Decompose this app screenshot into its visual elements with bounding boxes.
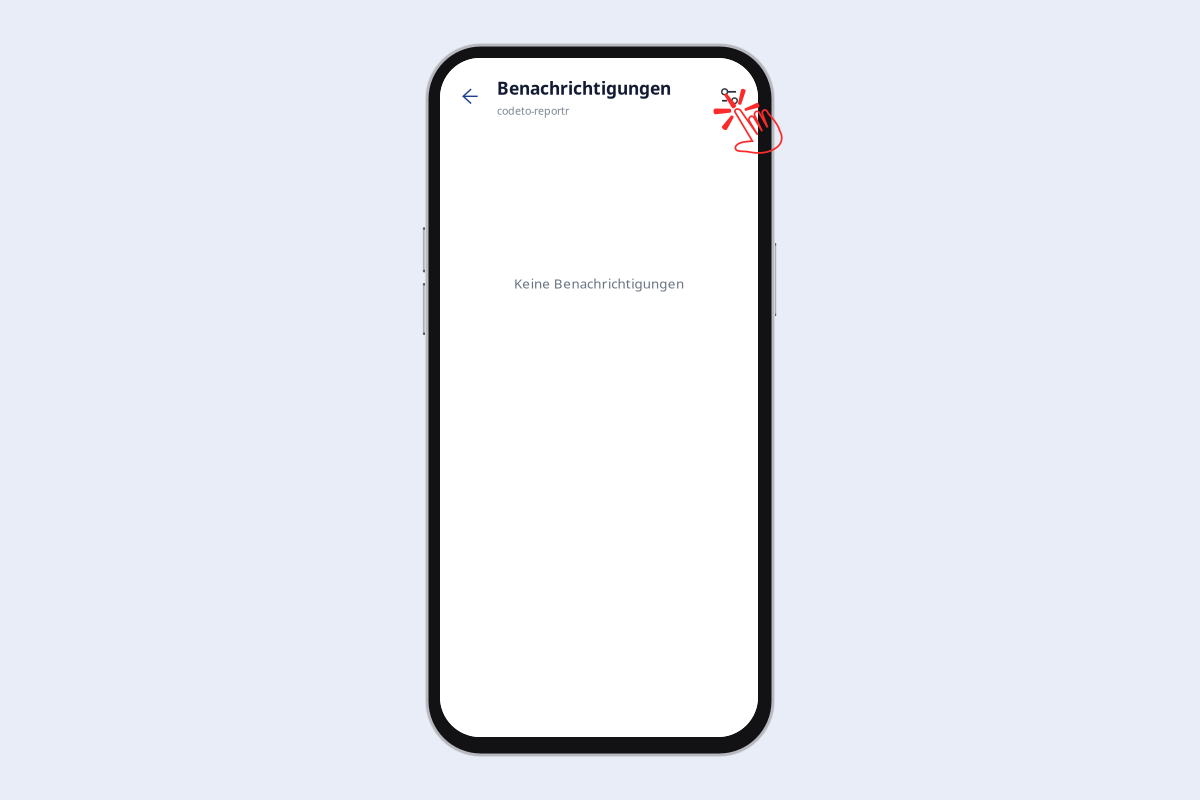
button[interactable]: Notification settings bbox=[716, 82, 742, 110]
staticText: Benachrichtigungen bbox=[497, 76, 671, 99]
staticText: codeto-reportr bbox=[497, 103, 569, 118]
button[interactable]: Back bbox=[455, 81, 485, 111]
staticText: Keine Benachrichtigungen bbox=[514, 274, 684, 292]
